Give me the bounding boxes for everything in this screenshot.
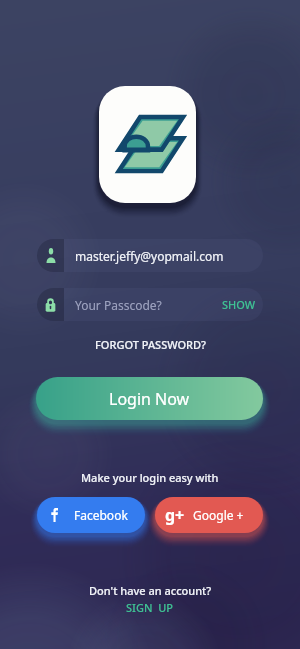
button[interactable]: Login Now (36, 377, 263, 420)
staticText: Login Now (109, 388, 190, 410)
button[interactable]: Facebook (37, 497, 145, 533)
staticText: Make your login easy with (81, 470, 219, 485)
staticText: Google + (193, 507, 244, 523)
staticText: g+ (165, 504, 185, 526)
staticText: Facebook (74, 507, 128, 523)
button[interactable]: FORGOT PASSWORD? (95, 337, 206, 352)
staticText: Your Passcode? (75, 297, 162, 313)
staticText: master.jeffy@yopmail.com (75, 248, 224, 264)
staticText: Don't have an account? (89, 583, 212, 598)
staticText: SHOW (222, 297, 256, 312)
button[interactable]: Your Passcode? (37, 288, 263, 321)
button[interactable]: SIGN UP (126, 600, 174, 615)
button[interactable]: SHOW (222, 297, 256, 312)
button[interactable]: master.jeffy@yopmail.com (37, 239, 263, 272)
button[interactable]: g+ (155, 497, 263, 533)
